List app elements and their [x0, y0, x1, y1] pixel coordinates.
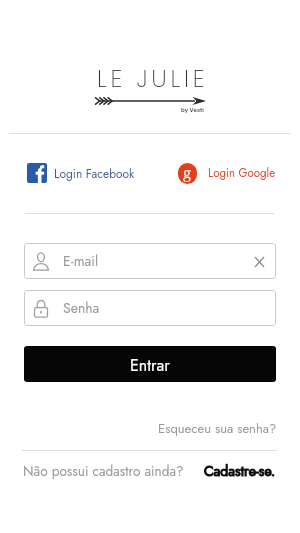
staticText: Cadastre-se.: [204, 461, 276, 481]
staticText: g: [183, 163, 192, 182]
staticText: LE JULIE: [97, 62, 209, 96]
other: Google: [178, 163, 197, 184]
staticText: Login Facebook: [54, 165, 135, 182]
staticText: Cadastre-se.: [204, 461, 276, 481]
other: Facebook: [27, 163, 47, 183]
button[interactable]: Clear: [253, 255, 266, 268]
button[interactable]: Entrar: [24, 346, 276, 382]
button[interactable]: Facebook: [27, 162, 135, 184]
staticText: Login Google: [208, 165, 276, 182]
staticText: Entrar: [130, 354, 170, 377]
staticText: by Vesti: [181, 106, 204, 114]
button[interactable]: E-mail: [24, 243, 276, 279]
button[interactable]: Senha: [24, 290, 276, 326]
button[interactable]: Esqueceu sua senha?: [158, 419, 277, 438]
button[interactable]: Google: [178, 162, 276, 184]
staticText: Não possui cadastro ainda?: [23, 461, 184, 481]
button[interactable]: Cadastre-se.: [204, 461, 276, 481]
staticText: E-mail: [63, 251, 99, 271]
staticText: Senha: [63, 298, 100, 318]
